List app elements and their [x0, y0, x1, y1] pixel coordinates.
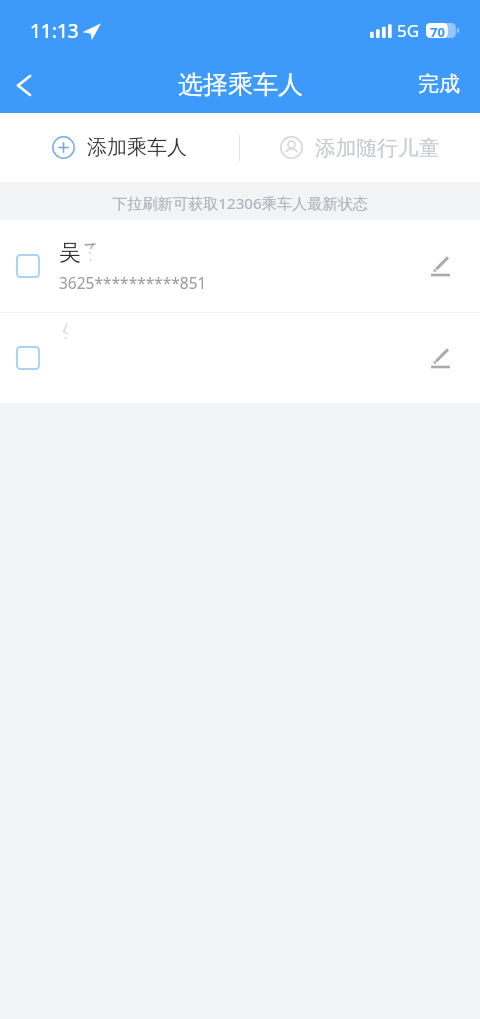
- button[interactable]: Select passenger: [16, 346, 40, 370]
- staticText: 选择乘车人: [178, 69, 303, 100]
- button[interactable]: Select passenger: [16, 254, 40, 278]
- button[interactable]: Back: [0, 60, 48, 108]
- staticText: 11:13: [30, 18, 79, 44]
- staticText: 下拉刷新可获取12306乘车人最新状态: [112, 193, 369, 214]
- button[interactable]: 完成: [398, 63, 480, 105]
- staticText: 5G: [397, 19, 420, 42]
- button[interactable]: 添加乘车人: [0, 113, 239, 182]
- button[interactable]: Edit: [416, 334, 464, 382]
- staticText: 添加随行儿童: [315, 135, 440, 161]
- button[interactable]: Select passenger: [0, 313, 480, 403]
- button[interactable]: 添加随行儿童: [240, 113, 480, 182]
- staticText: 添加乘车人: [87, 135, 187, 160]
- staticText: 70: [430, 23, 445, 38]
- staticText: 吴: [59, 239, 81, 267]
- staticText: 3625**********851: [59, 272, 207, 293]
- staticText: 完成: [418, 71, 460, 97]
- button[interactable]: Edit: [416, 242, 464, 290]
- button[interactable]: Select passenger: [0, 220, 480, 312]
